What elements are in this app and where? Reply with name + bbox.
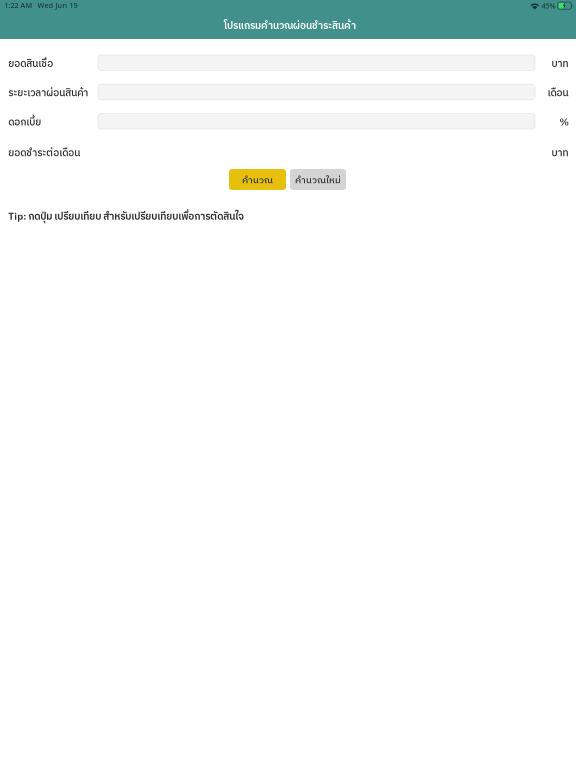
staticText: ดอกเบี้ย: [8, 114, 41, 131]
staticText: ระยะเวลาผ่อนสินค้า: [8, 85, 88, 102]
staticText: บาท: [552, 145, 569, 162]
staticText: เดือน: [548, 85, 569, 102]
button[interactable]: คำนวณ: [229, 169, 286, 190]
staticText: โปรแกรมคำนวณผ่อนชำระสินค้า: [224, 18, 356, 34]
staticText: %: [560, 114, 569, 131]
staticText: คำนวณใหม่: [295, 173, 341, 188]
staticText: บาท: [552, 56, 569, 72]
staticText: ยอดชำระต่อเดือน: [8, 145, 80, 162]
staticText: Tip: กดปุ่ม เปรียบเทียบ สำหรับเปรียบเทีย…: [8, 209, 244, 225]
staticText: 1:22 AM: [4, 0, 32, 10]
button[interactable]: คำนวณใหม่: [290, 169, 346, 190]
staticText: ยอดสินเชื่อ: [8, 56, 53, 72]
staticText: Wed Jun 19: [38, 0, 78, 10]
staticText: คำนวณ: [242, 173, 273, 188]
staticText: 45%: [542, 1, 556, 11]
